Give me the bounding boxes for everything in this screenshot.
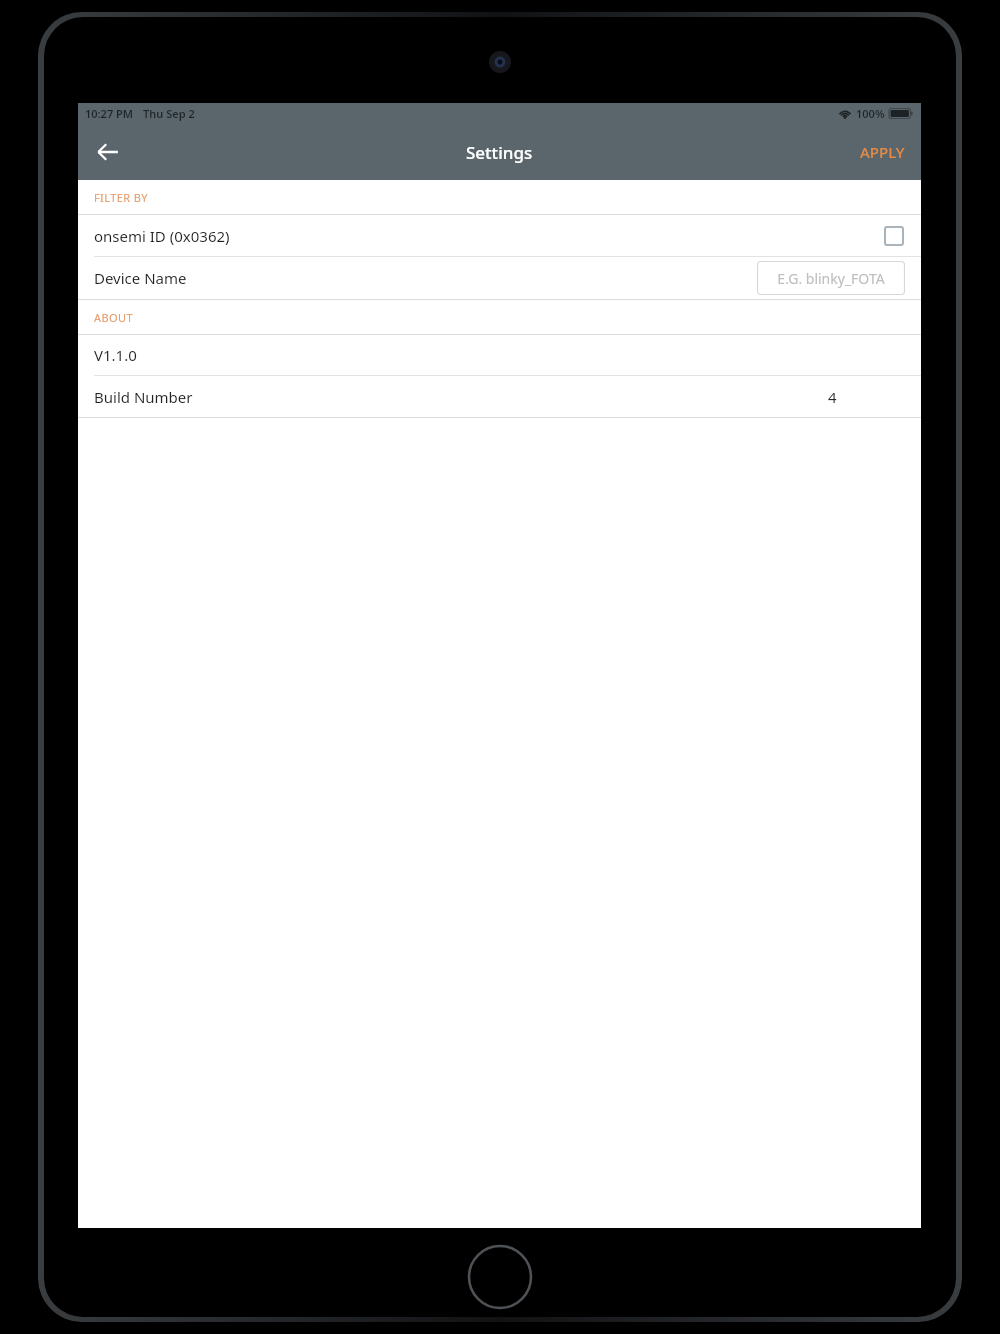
staticText: E.G. blinky_FOTA xyxy=(777,269,885,288)
staticText: 4 xyxy=(828,387,837,407)
staticText: 100% xyxy=(856,106,885,121)
staticText: APPLY xyxy=(860,142,905,162)
staticText: 10:27 PM xyxy=(85,106,134,121)
button[interactable]: E.G. blinky_FOTA xyxy=(757,261,905,295)
staticText: Device Name xyxy=(94,268,187,288)
button[interactable]: Build Number xyxy=(78,376,921,417)
staticText: onsemi ID (0x0362) xyxy=(94,226,230,246)
staticText: Thu Sep 2 xyxy=(143,106,195,121)
button[interactable]: Device Name xyxy=(78,257,921,299)
staticText: Settings xyxy=(466,141,533,164)
staticText: FILTER BY xyxy=(94,190,148,205)
button[interactable]: V1.1.0 xyxy=(78,335,921,375)
button[interactable]: Back xyxy=(84,128,132,176)
button[interactable]: APPLY xyxy=(844,132,921,172)
staticText: V1.1.0 xyxy=(94,345,137,365)
button[interactable]: onsemi ID (0x0362) xyxy=(78,215,921,256)
staticText: Build Number xyxy=(94,387,193,407)
staticText: ABOUT xyxy=(94,310,133,325)
